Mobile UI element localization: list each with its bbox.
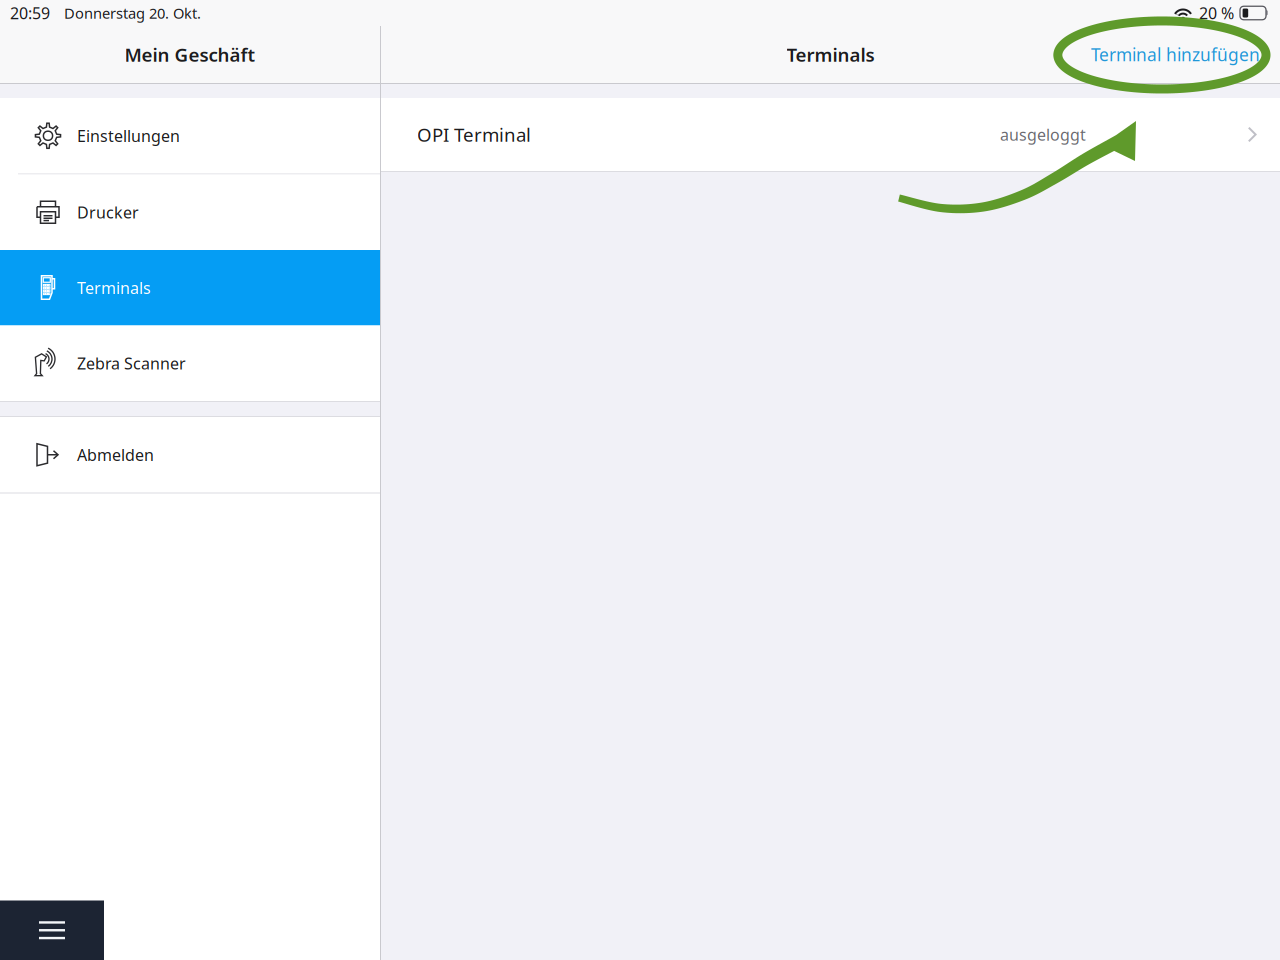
- staticText: Mein Geschäft: [124, 42, 255, 67]
- staticText: Drucker: [77, 202, 139, 223]
- staticText: Terminal hinzufügen: [1091, 43, 1260, 66]
- staticText: 20 %: [1199, 2, 1234, 24]
- button[interactable]: Abmelden: [0, 417, 380, 492]
- button[interactable]: Drucker: [0, 174, 380, 250]
- staticText: OPI Terminal: [417, 122, 531, 147]
- staticText: Abmelden: [77, 444, 154, 465]
- button[interactable]: Zebra Scanner: [0, 325, 380, 401]
- button[interactable]: OPI Terminal: [381, 98, 1280, 171]
- button[interactable]: Terminals: [0, 250, 380, 325]
- button[interactable]: Terminal hinzufügen: [1091, 26, 1280, 83]
- staticText: Terminals: [786, 42, 874, 67]
- button[interactable]: Einstellungen: [0, 98, 380, 173]
- staticText: Einstellungen: [77, 125, 180, 146]
- staticText: Zebra Scanner: [77, 353, 186, 374]
- staticText: Terminals: [77, 277, 151, 298]
- staticText: 20:59: [10, 2, 50, 24]
- staticText: Donnerstag 20. Okt.: [64, 3, 201, 23]
- staticText: ausgeloggt: [1000, 124, 1086, 145]
- button[interactable]: Menü: [0, 900, 104, 960]
